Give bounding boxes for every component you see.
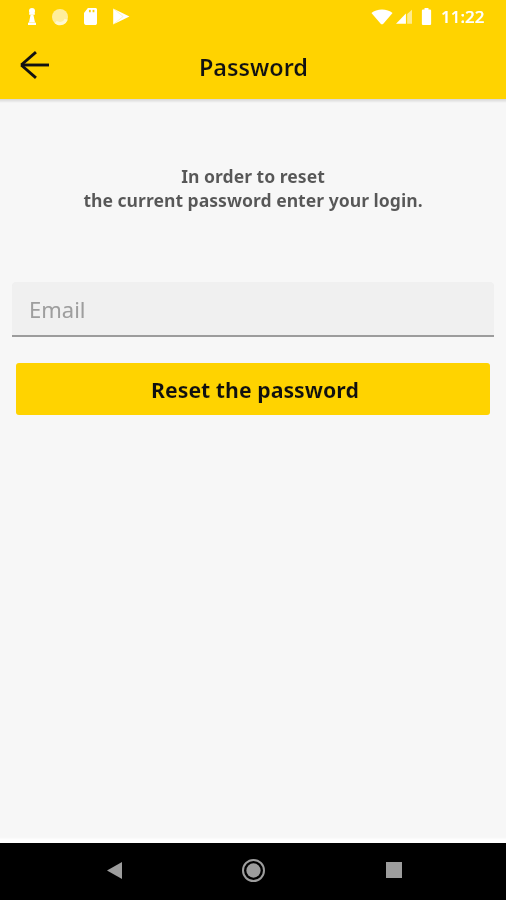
staticText: In order to reset the current password e…	[0, 164, 506, 212]
staticText: 11:22	[441, 5, 485, 28]
button[interactable]: Email	[12, 282, 494, 335]
button[interactable]: Recent apps	[370, 846, 418, 894]
staticText: Email	[29, 294, 86, 324]
button[interactable]: Back	[90, 846, 138, 894]
staticText: Password	[199, 51, 308, 83]
button[interactable]: Reset the password	[16, 363, 490, 415]
button[interactable]: Home	[229, 846, 277, 894]
button[interactable]: Back	[10, 41, 58, 89]
staticText: Reset the password	[151, 375, 359, 404]
